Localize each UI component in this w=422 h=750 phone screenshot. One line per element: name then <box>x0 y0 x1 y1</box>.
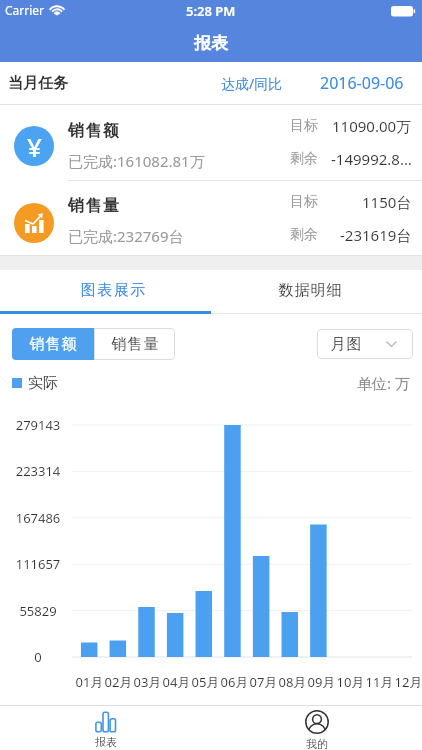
staticText: 06月 <box>220 673 249 691</box>
staticText: 01月 <box>75 673 104 691</box>
button[interactable]: 达成/同比 <box>221 74 283 93</box>
staticText: 1150台 <box>362 192 412 212</box>
staticText: 已完成:232769台 <box>68 226 184 246</box>
staticText: 08月 <box>278 673 307 691</box>
staticText: 目标 <box>290 117 318 135</box>
staticText: 03月 <box>133 673 162 691</box>
staticText: Carrier <box>5 2 45 18</box>
staticText: -149992.8… <box>331 149 412 169</box>
staticText: 04月 <box>162 673 191 691</box>
staticText: 11090.00万 <box>332 116 412 136</box>
button[interactable]: ¥ <box>0 105 422 180</box>
button[interactable]: 数据明细 <box>211 270 422 314</box>
staticText: 销售量 <box>111 335 159 354</box>
staticText: 55829 <box>8 602 68 620</box>
staticText: 05月 <box>191 673 220 691</box>
staticText: 剩余 <box>290 226 318 244</box>
staticText: 11月 <box>365 673 394 691</box>
staticText: 月图 <box>330 335 362 354</box>
staticText: 报表 <box>95 735 117 749</box>
staticText: 0 <box>8 648 68 666</box>
staticText: 报表 <box>194 33 228 54</box>
button[interactable]: 我的 <box>211 706 422 750</box>
staticText: 目标 <box>290 193 318 211</box>
staticText: 数据明细 <box>278 281 342 300</box>
staticText: 已完成:161082.81万 <box>68 151 205 171</box>
staticText: ¥ <box>27 129 42 164</box>
staticText: 111657 <box>8 555 68 573</box>
staticText: 销售额 <box>68 121 121 141</box>
staticText: -231619台 <box>340 225 412 245</box>
button[interactable]: 2016-09-06 <box>320 72 404 94</box>
button[interactable]: 图表展示 <box>0 270 211 314</box>
button[interactable]: 报表 <box>0 706 211 750</box>
staticText: 167486 <box>8 509 68 527</box>
staticText: 12月 <box>394 673 422 691</box>
staticText: 07月 <box>249 673 278 691</box>
staticText: 实际 <box>28 374 58 393</box>
staticText: 单位: 万 <box>357 373 410 393</box>
staticText: 5:28 PM <box>186 2 236 20</box>
button[interactable]: 销售量 <box>0 181 422 255</box>
staticText: 销售量 <box>68 196 121 216</box>
button[interactable]: 销售额 <box>12 328 94 360</box>
staticText: 02月 <box>104 673 133 691</box>
staticText: 我的 <box>306 737 328 750</box>
staticText: 09月 <box>307 673 336 691</box>
staticText: 当月任务 <box>8 74 68 93</box>
staticText: 10月 <box>336 673 365 691</box>
staticText: 223314 <box>8 462 68 480</box>
button[interactable]: 销售量 <box>94 328 175 360</box>
staticText: 279143 <box>8 416 68 434</box>
staticText: 图表展示 <box>80 281 146 300</box>
button[interactable]: 月图 <box>317 329 413 359</box>
staticText: 销售额 <box>29 335 77 354</box>
staticText: 剩余 <box>290 150 318 168</box>
